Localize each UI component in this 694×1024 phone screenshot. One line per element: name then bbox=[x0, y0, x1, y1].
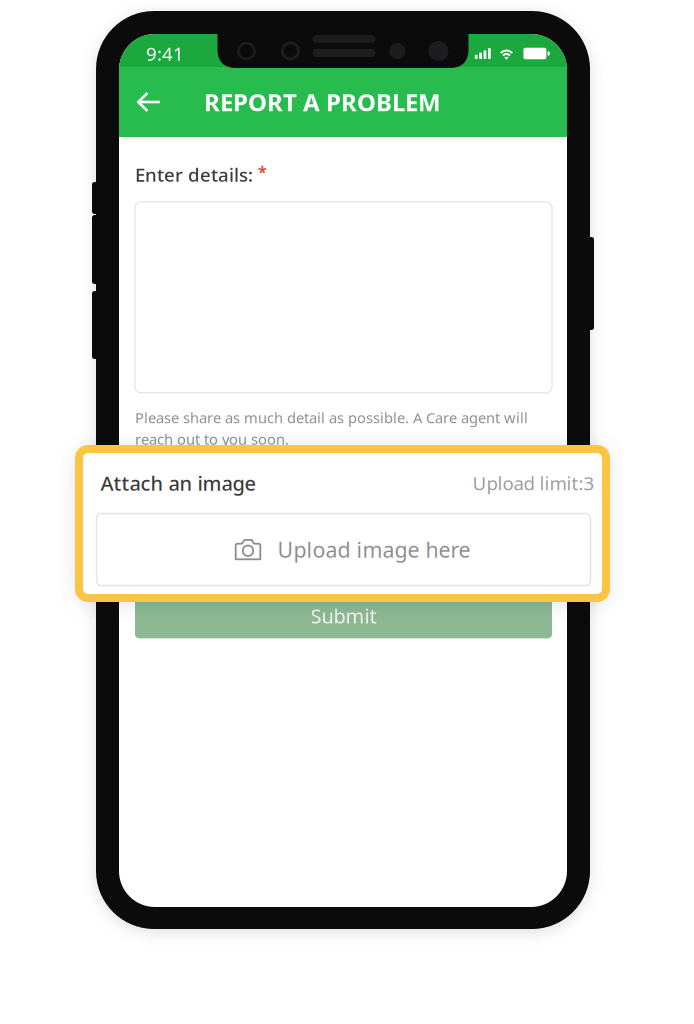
staticText: Attach an image bbox=[100, 470, 255, 496]
staticText: Upload image here bbox=[277, 535, 470, 564]
staticText: Submit bbox=[310, 602, 376, 629]
staticText: REPORT A PROBLEM bbox=[204, 86, 441, 118]
button[interactable]: Back bbox=[127, 80, 171, 124]
staticText: Upload image here bbox=[272, 519, 449, 546]
button[interactable]: Upload image here bbox=[96, 513, 590, 585]
staticText: * bbox=[258, 161, 267, 182]
staticText: reach out to you soon. bbox=[135, 429, 289, 449]
staticText: Upload limit:3 bbox=[439, 468, 552, 491]
staticText: Attach an image bbox=[135, 467, 290, 493]
button[interactable]: Submit bbox=[135, 593, 552, 638]
staticText: Enter details: bbox=[135, 162, 258, 187]
staticText: Upload limit:3 bbox=[472, 471, 594, 495]
staticText: 9:41 bbox=[146, 41, 184, 66]
staticText: Please share as much detail as possible.… bbox=[135, 408, 528, 427]
